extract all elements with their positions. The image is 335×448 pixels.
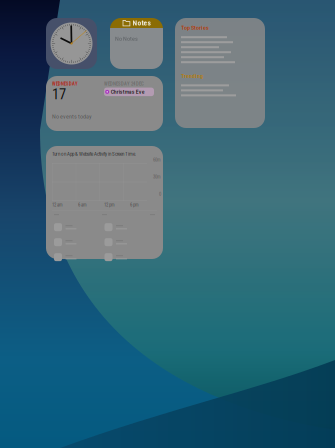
staticText: WEDNESDAY <box>52 81 78 87</box>
staticText: 12 am <box>52 202 63 207</box>
staticText: 6 am <box>78 202 87 207</box>
staticText: 30m <box>153 174 161 180</box>
staticText: 0 <box>159 191 161 197</box>
button[interactable]: News widget <box>175 18 265 128</box>
staticText: WEDNESDAY 24 DEC <box>104 81 144 87</box>
staticText: No events today <box>52 113 92 120</box>
button[interactable]: Screen Time widget <box>46 146 163 259</box>
button[interactable]: Notes widget <box>110 18 163 69</box>
staticText: 60m <box>153 157 161 162</box>
staticText: Top Stories <box>181 24 209 31</box>
staticText: No Notes <box>115 35 138 42</box>
staticText: 6 pm <box>130 202 139 207</box>
staticText: Trending <box>181 72 203 79</box>
staticText: Turn on App & Website Activity in Screen… <box>52 151 136 157</box>
staticText: 12 pm <box>104 202 115 207</box>
staticText: 17 <box>52 86 66 103</box>
button[interactable]: Calendar widget <box>46 76 163 131</box>
staticText: Notes <box>132 19 150 27</box>
button[interactable]: Clock widget <box>46 18 97 69</box>
staticText: Christmas Eve <box>111 88 145 95</box>
